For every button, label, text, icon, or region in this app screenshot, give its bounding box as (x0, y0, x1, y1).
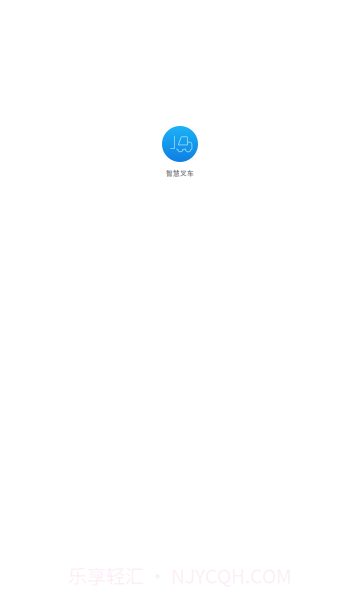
staticText: 智慧叉车 (166, 168, 194, 178)
staticText: 乐享轻汇 · NJYCQH.COM (68, 561, 292, 589)
